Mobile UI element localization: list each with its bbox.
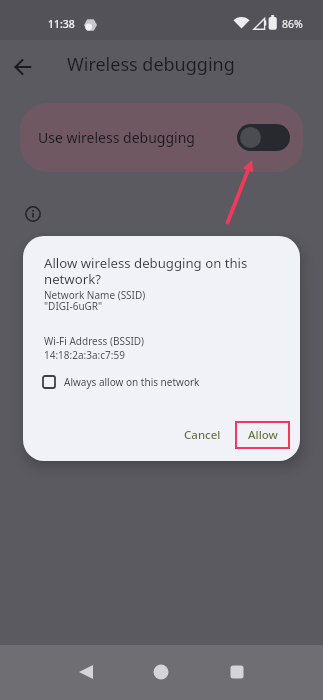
staticText: 11:38 <box>48 17 75 31</box>
staticText: Use wireless debugging <box>38 128 195 147</box>
button[interactable] <box>148 659 174 685</box>
staticText: "DIGI-6uGR" <box>44 299 103 313</box>
button[interactable]: Always allow on this network <box>42 375 200 389</box>
staticText: Network Name (SSID) <box>44 288 146 302</box>
staticText: Allow <box>248 427 278 443</box>
staticText: Allow wireless debugging on this network… <box>44 254 248 288</box>
button[interactable]: Allow <box>236 422 289 448</box>
button[interactable]: Use wireless debugging <box>20 103 303 172</box>
button[interactable] <box>73 659 99 685</box>
staticText: Always allow on this network <box>64 375 200 389</box>
staticText: 14:18:2a:3a:c7:59 <box>44 348 125 362</box>
staticText: 86% <box>282 17 303 31</box>
button[interactable] <box>224 659 250 685</box>
staticText: Wi-Fi Address (BSSID) <box>44 334 145 348</box>
button[interactable]: Cancel <box>175 422 229 448</box>
staticText: Cancel <box>184 427 221 443</box>
staticText: Wireless debugging <box>67 52 235 77</box>
button[interactable] <box>237 124 290 151</box>
button[interactable] <box>6 54 46 82</box>
